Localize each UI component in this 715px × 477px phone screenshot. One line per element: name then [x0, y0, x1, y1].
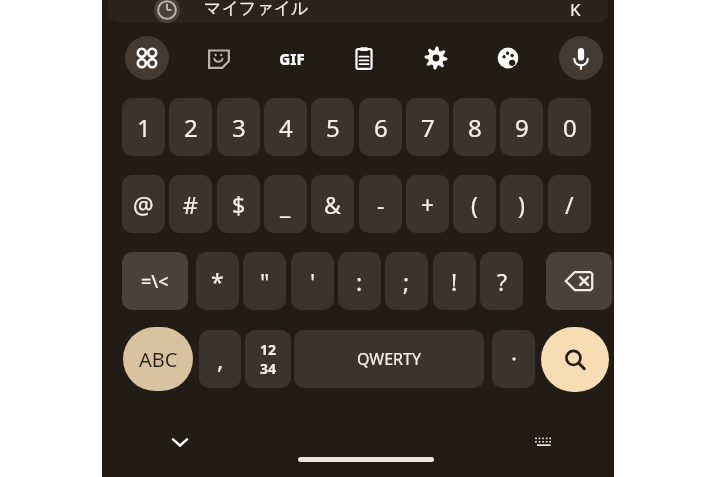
- staticText: !: [451, 266, 458, 297]
- staticText: K: [570, 0, 581, 21]
- button[interactable]: GIF: [270, 36, 314, 80]
- other: Recent: [154, 0, 180, 23]
- button[interactable]: *: [196, 252, 239, 310]
- button[interactable]: Themes: [486, 36, 530, 80]
- button[interactable]: =\<: [122, 252, 188, 310]
- button[interactable]: 9: [500, 98, 543, 156]
- staticText: #: [183, 189, 198, 220]
- staticText: 1: [137, 111, 151, 144]
- button[interactable]: _: [264, 175, 307, 233]
- button[interactable]: 4: [264, 98, 307, 156]
- button[interactable]: Stickers: [197, 36, 241, 80]
- button[interactable]: /: [548, 175, 591, 233]
- button[interactable]: &: [311, 175, 354, 233]
- staticText: 34: [260, 359, 277, 378]
- staticText: ABC: [139, 346, 178, 373]
- button[interactable]: $: [217, 175, 260, 233]
- button[interactable]: (: [453, 175, 496, 233]
- staticText: 4: [279, 111, 293, 144]
- staticText: ): [518, 189, 525, 220]
- button[interactable]: Search: [541, 327, 609, 392]
- button[interactable]: Period: [492, 330, 535, 388]
- staticText: 6: [374, 111, 388, 144]
- staticText: :: [356, 266, 363, 297]
- staticText: =\<: [141, 269, 169, 294]
- button[interactable]: Clipboard: [342, 36, 386, 80]
- button[interactable]: ABC: [123, 327, 193, 391]
- button[interactable]: :: [338, 252, 381, 310]
- staticText: 9: [515, 111, 529, 144]
- button[interactable]: 1: [122, 98, 165, 156]
- staticText: ,: [217, 343, 224, 376]
- button[interactable]: Backspace: [546, 252, 612, 310]
- staticText: 7: [421, 111, 435, 144]
- staticText: 12: [260, 340, 277, 359]
- staticText: ;: [403, 266, 410, 297]
- button[interactable]: 5: [311, 98, 354, 156]
- staticText: *: [211, 266, 224, 297]
- staticText: 0: [563, 111, 577, 144]
- button[interactable]: -: [359, 175, 402, 233]
- staticText: マイファイル: [204, 0, 309, 19]
- staticText: _: [280, 189, 291, 220]
- button[interactable]: Settings: [414, 36, 458, 80]
- staticText: /: [565, 189, 574, 220]
- button[interactable]: ;: [385, 252, 428, 310]
- button[interactable]: !: [433, 252, 476, 310]
- button[interactable]: Apps: [125, 36, 169, 80]
- staticText: ': [310, 266, 316, 297]
- button[interactable]: #: [169, 175, 212, 233]
- button[interactable]: ,: [199, 330, 241, 388]
- button[interactable]: ?: [480, 252, 523, 310]
- staticText: &: [324, 189, 341, 220]
- button[interactable]: 2: [169, 98, 212, 156]
- button[interactable]: +: [406, 175, 449, 233]
- button[interactable]: 0: [548, 98, 591, 156]
- button[interactable]: QWERTY: [294, 330, 484, 388]
- staticText: GIF: [272, 49, 312, 69]
- button[interactable]: ): [500, 175, 543, 233]
- staticText: 2: [184, 111, 198, 144]
- button[interactable]: 3: [217, 98, 260, 156]
- button[interactable]: 6: [359, 98, 402, 156]
- button[interactable]: Voice input: [559, 36, 603, 80]
- staticText: +: [421, 189, 435, 220]
- button[interactable]: Recent: [108, 0, 608, 23]
- staticText: 8: [468, 111, 482, 144]
- button[interactable]: ": [243, 252, 286, 310]
- staticText: 5: [326, 111, 340, 144]
- staticText: ?: [497, 266, 507, 297]
- staticText: (: [471, 189, 478, 220]
- button[interactable]: 7: [406, 98, 449, 156]
- button[interactable]: @: [122, 175, 165, 233]
- staticText: QWERTY: [357, 348, 422, 370]
- button[interactable]: ': [291, 252, 334, 310]
- staticText: @: [133, 189, 154, 220]
- button[interactable]: 8: [453, 98, 496, 156]
- button[interactable]: Numbers: [245, 330, 291, 388]
- staticText: 3: [232, 111, 246, 144]
- staticText: $: [232, 189, 246, 220]
- staticText: ": [260, 266, 270, 297]
- staticText: -: [377, 189, 385, 220]
- button[interactable]: Switch keyboard: [526, 424, 562, 460]
- button[interactable]: Hide keyboard: [162, 424, 198, 460]
